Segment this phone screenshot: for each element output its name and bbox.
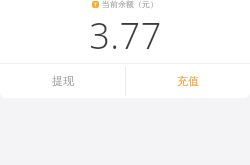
button[interactable]: 提现	[0, 64, 125, 98]
staticText: 3.77	[89, 11, 162, 60]
other: Balance coin	[92, 1, 99, 8]
staticText: 提现	[52, 74, 74, 88]
button[interactable]: 充值	[126, 64, 250, 98]
staticText: 充值	[177, 74, 199, 88]
staticText: 当前余额（元）	[102, 0, 158, 9]
